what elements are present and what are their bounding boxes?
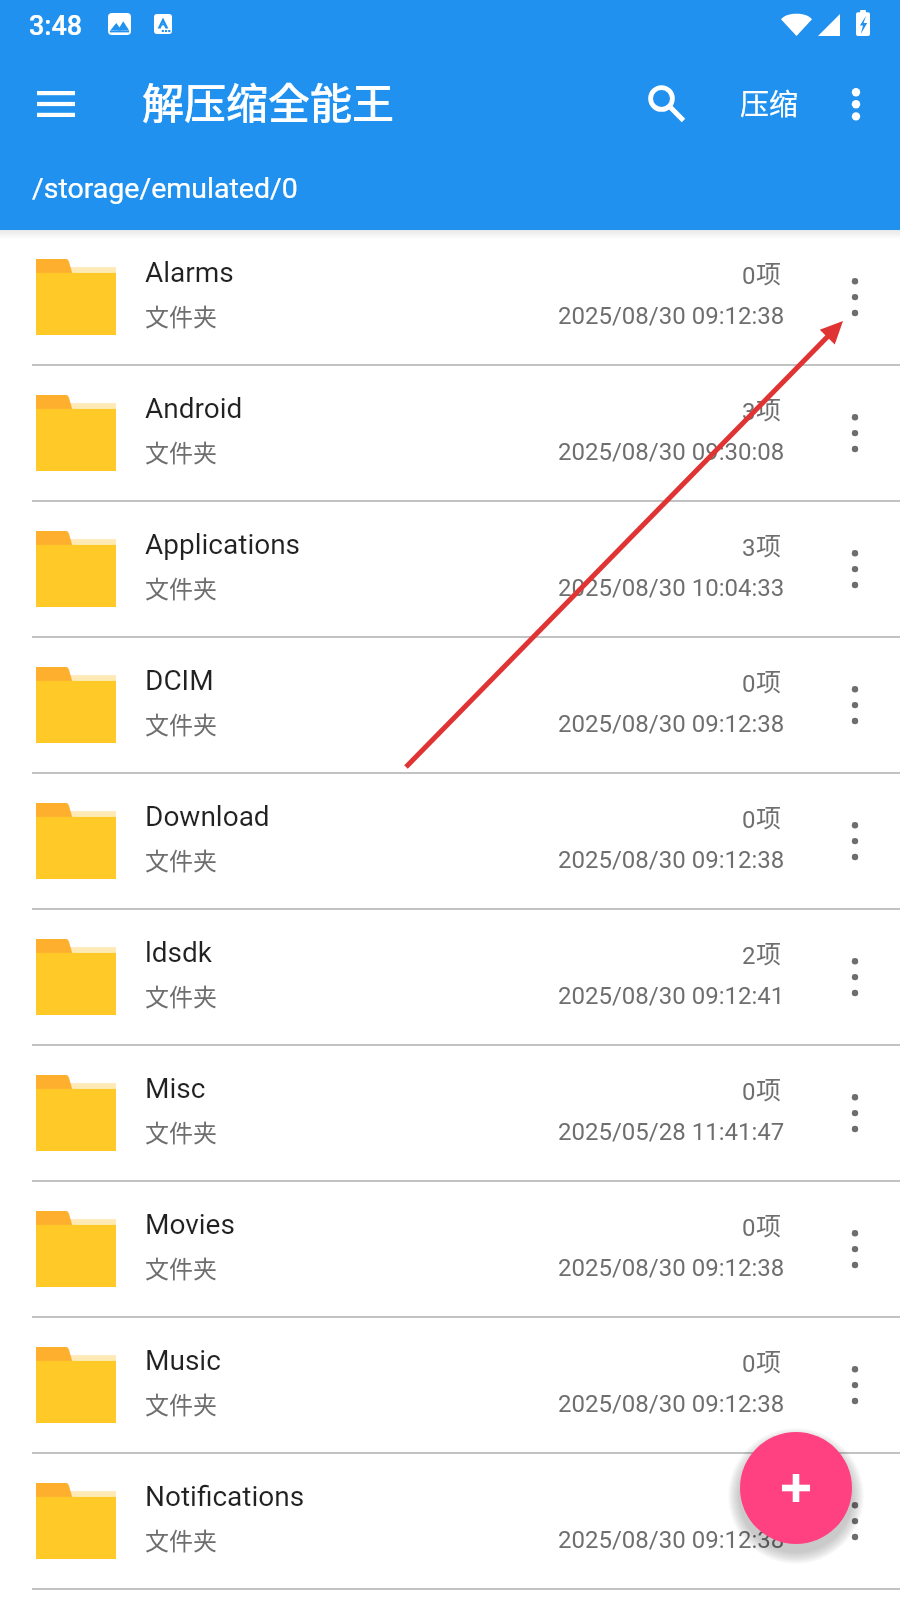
staticText: 文件夹 xyxy=(145,1386,217,1421)
button[interactable]: Music xyxy=(0,1318,900,1452)
button[interactable]: More xyxy=(826,1318,886,1452)
staticText: 2025/08/30 09:12:38 xyxy=(558,1526,785,1554)
staticText: 项 xyxy=(756,1206,782,1242)
staticText: 3:48 xyxy=(29,10,83,42)
button[interactable]: More xyxy=(826,366,886,500)
staticText: Misc xyxy=(145,1072,206,1105)
staticText: 2025/08/30 10:04:33 xyxy=(558,574,785,602)
staticText: 0 xyxy=(742,1486,756,1514)
staticText: 2025/05/28 11:41:47 xyxy=(558,1118,785,1146)
button[interactable]: More xyxy=(826,230,886,364)
staticText: Download xyxy=(145,800,270,833)
staticText: 文件夹 xyxy=(145,1250,217,1285)
staticText: 文件夹 xyxy=(145,1114,217,1149)
button[interactable]: Applications xyxy=(0,502,900,636)
staticText: 项 xyxy=(756,1342,782,1378)
staticText: 3 xyxy=(742,534,756,562)
staticText: 文件夹 xyxy=(145,842,217,877)
button[interactable]: DCIM xyxy=(0,638,900,772)
button[interactable]: Menu xyxy=(7,68,105,140)
staticText: 项 xyxy=(756,934,782,970)
staticText: 0 xyxy=(742,1078,756,1106)
button[interactable]: More xyxy=(826,774,886,908)
staticText: 2025/08/30 09:12:41 xyxy=(558,982,785,1010)
staticText: 2025/08/30 09:12:38 xyxy=(558,846,785,874)
button[interactable]: More xyxy=(826,638,886,772)
staticText: Android xyxy=(145,392,243,425)
staticText: 0 xyxy=(742,1214,756,1242)
staticText: 2025/08/30 09:12:38 xyxy=(558,1254,785,1282)
button[interactable]: More xyxy=(826,1454,886,1588)
staticText: 文件夹 xyxy=(145,978,217,1013)
staticText: 2 xyxy=(742,942,756,970)
staticText: DCIM xyxy=(145,664,214,697)
button[interactable]: Movies xyxy=(0,1182,900,1316)
button[interactable]: Add xyxy=(740,1432,852,1544)
button[interactable]: ldsdk xyxy=(0,910,900,1044)
staticText: Music xyxy=(145,1344,221,1377)
button[interactable]: More xyxy=(826,502,886,636)
staticText: 文件夹 xyxy=(145,706,217,741)
staticText: 压缩 xyxy=(740,81,799,123)
staticText: Movies xyxy=(145,1208,235,1241)
staticText: 2025/08/30 09:30:08 xyxy=(558,438,785,466)
staticText: 2025/08/30 09:12:38 xyxy=(558,710,785,738)
staticText: 文件夹 xyxy=(145,570,217,605)
staticText: Notifications xyxy=(145,1480,305,1513)
staticText: 2025/08/30 09:12:38 xyxy=(558,302,785,330)
staticText: ldsdk xyxy=(145,936,213,969)
staticText: 项 xyxy=(756,526,782,562)
staticText: 0 xyxy=(742,262,756,290)
button[interactable]: Misc xyxy=(0,1046,900,1180)
button[interactable]: Download xyxy=(0,774,900,908)
button[interactable]: More options xyxy=(822,55,890,153)
staticText: /storage/emulated/0 xyxy=(32,172,298,205)
staticText: 2025/08/30 09:12:38 xyxy=(558,1390,785,1418)
staticText: 项 xyxy=(756,254,782,290)
staticText: 项 xyxy=(756,662,782,698)
staticText: 0 xyxy=(742,670,756,698)
staticText: 文件夹 xyxy=(145,1522,217,1557)
button[interactable]: More xyxy=(826,1046,886,1180)
staticText: Applications xyxy=(145,528,301,561)
button[interactable]: Search xyxy=(618,58,712,148)
button[interactable]: Alarms xyxy=(0,230,900,364)
staticText: Alarms xyxy=(145,256,234,289)
button[interactable]: Android xyxy=(0,366,900,500)
staticText: 解压缩全能王 xyxy=(142,70,395,131)
staticText: 文件夹 xyxy=(145,434,217,469)
button[interactable]: More xyxy=(826,1182,886,1316)
staticText: 项 xyxy=(756,390,782,426)
staticText: 文件夹 xyxy=(145,298,217,333)
button[interactable]: More xyxy=(826,910,886,1044)
staticText: 项 xyxy=(756,798,782,834)
staticText: 0 xyxy=(742,806,756,834)
staticText: 0 xyxy=(742,1350,756,1378)
button[interactable]: Notifications xyxy=(0,1454,900,1588)
staticText: 3 xyxy=(742,398,756,426)
button[interactable]: 压缩 xyxy=(716,55,822,153)
staticText: 项 xyxy=(756,1070,782,1106)
